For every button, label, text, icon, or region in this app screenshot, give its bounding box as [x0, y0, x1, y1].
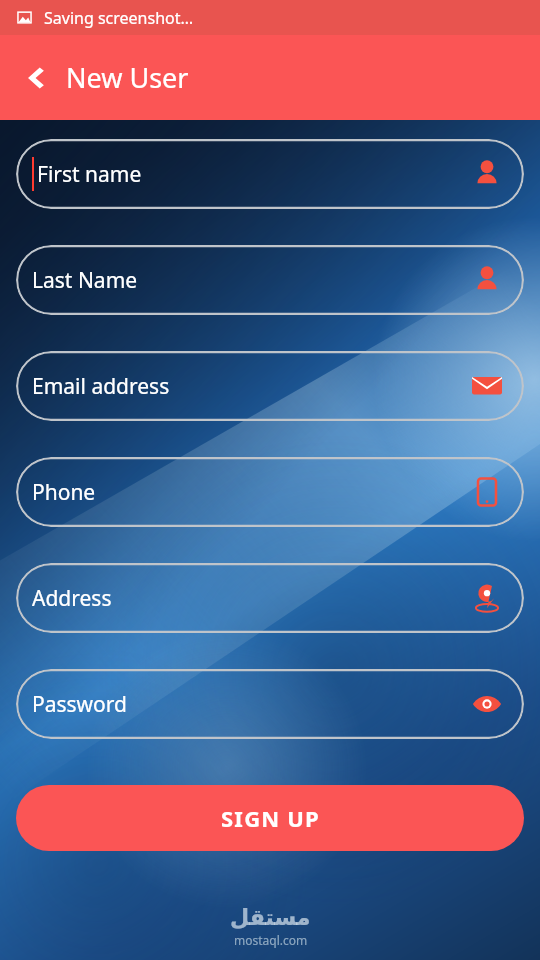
- button[interactable]: Last Name: [16, 245, 524, 315]
- staticText: Password: [32, 690, 127, 719]
- staticText: New User: [66, 59, 189, 96]
- staticText: مستقل: [230, 905, 311, 931]
- button[interactable]: First name: [16, 139, 524, 209]
- staticText: First name: [37, 160, 142, 189]
- button[interactable]: Back: [10, 54, 58, 102]
- staticText: Email address: [32, 372, 170, 401]
- staticText: mostaql.com: [234, 932, 308, 948]
- button[interactable]: Email address: [16, 351, 524, 421]
- button[interactable]: Address: [16, 563, 524, 633]
- staticText: Address: [32, 584, 112, 613]
- staticText: SIGN UP: [221, 803, 320, 833]
- button[interactable]: Password: [16, 669, 524, 739]
- staticText: Last Name: [32, 266, 138, 295]
- staticText: Phone: [32, 478, 96, 507]
- staticText: Saving screenshot…: [44, 7, 194, 29]
- button[interactable]: SIGN UP: [16, 785, 524, 851]
- button[interactable]: Phone: [16, 457, 524, 527]
